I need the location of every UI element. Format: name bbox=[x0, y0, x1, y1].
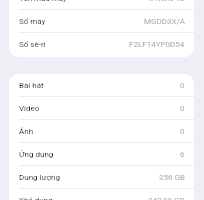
staticText: 0 bbox=[180, 104, 185, 113]
staticText: 256 GB bbox=[159, 173, 185, 182]
button[interactable]: Số máy bbox=[9, 10, 194, 33]
staticText: 242,88 GB bbox=[148, 196, 185, 200]
staticText: Tên mẫu máy bbox=[19, 0, 67, 3]
staticText: Số máy bbox=[19, 17, 46, 26]
staticText: Số sê-ri bbox=[19, 40, 46, 49]
staticText: MGDD3X/A bbox=[144, 17, 185, 26]
button[interactable]: Ảnh bbox=[9, 120, 194, 143]
staticText: 6 bbox=[180, 150, 185, 159]
button[interactable]: Ứng dụng bbox=[9, 143, 194, 166]
staticText: Bài hát bbox=[19, 81, 44, 90]
staticText: iPhone 12 bbox=[149, 0, 185, 3]
staticText: Ảnh bbox=[19, 127, 34, 136]
staticText: 0 bbox=[180, 127, 185, 136]
button[interactable]: Tên mẫu máy bbox=[9, 0, 194, 10]
staticText: Dung lượng bbox=[19, 173, 60, 182]
staticText: Video bbox=[19, 104, 40, 113]
button[interactable]: Bài hát bbox=[9, 74, 194, 97]
staticText: Khả dụng bbox=[19, 196, 53, 200]
button[interactable]: Video bbox=[9, 97, 194, 120]
staticText: 0 bbox=[180, 81, 185, 90]
button[interactable]: Dung lượng bbox=[9, 166, 194, 189]
button[interactable]: Số sê-ri bbox=[9, 33, 194, 56]
staticText: Ứng dụng bbox=[19, 150, 54, 159]
staticText: F2LF14YP0D54 bbox=[129, 40, 185, 49]
button[interactable]: Khả dụng bbox=[9, 189, 194, 200]
